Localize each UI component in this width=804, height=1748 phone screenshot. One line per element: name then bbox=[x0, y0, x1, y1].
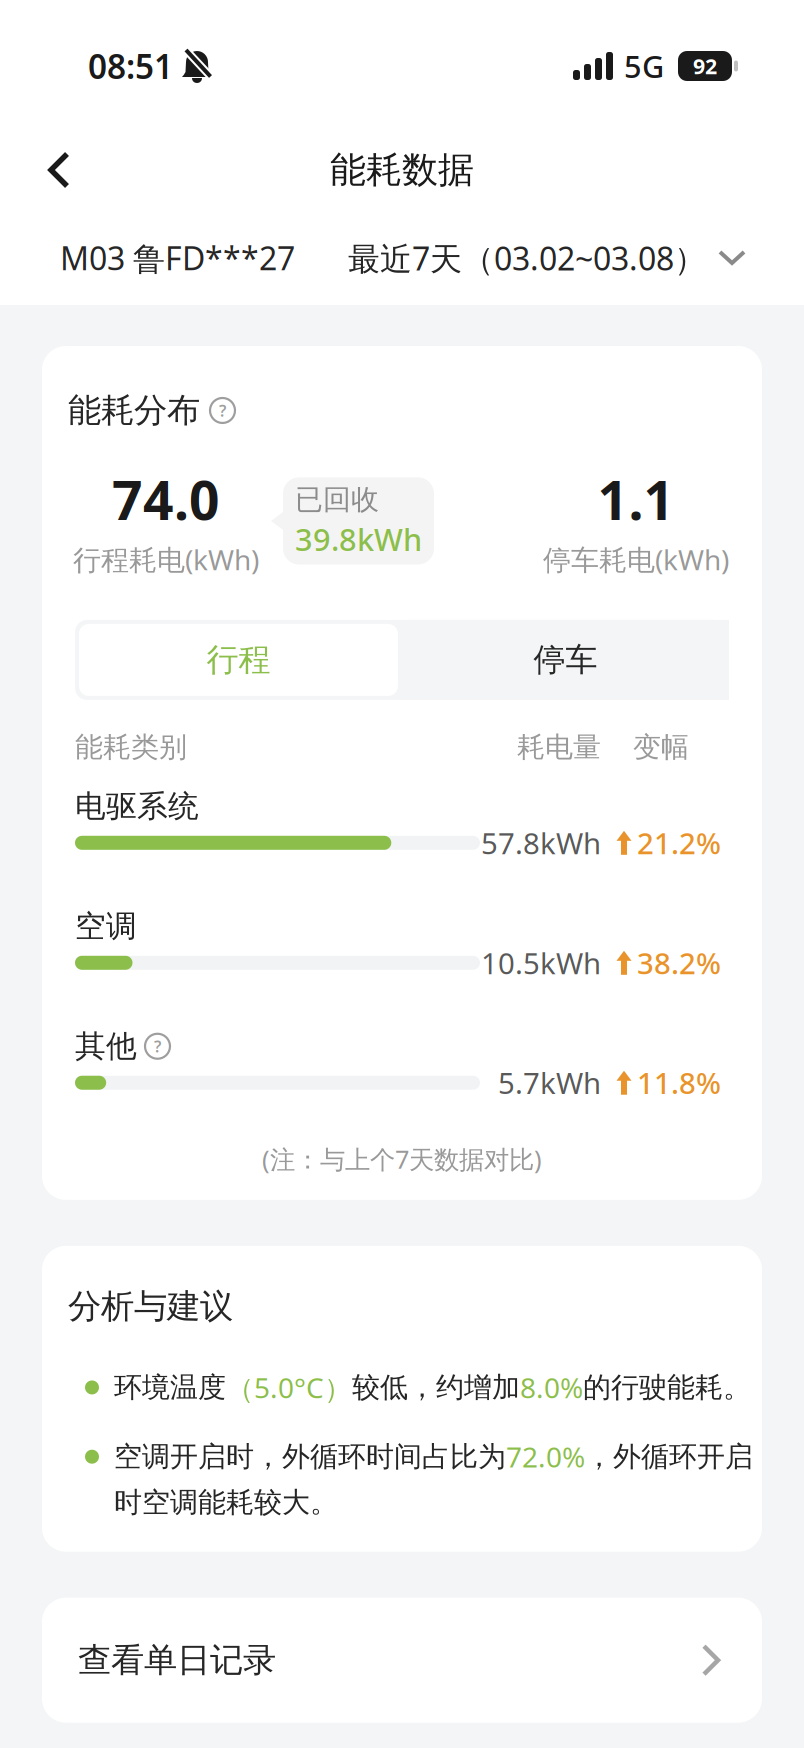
staticText: 57.8kWh bbox=[481, 823, 601, 862]
staticText: 较低，约增加 bbox=[352, 1370, 520, 1405]
button[interactable]: 停车 bbox=[402, 620, 729, 700]
staticText: 空调 bbox=[75, 907, 137, 945]
staticText: ，外循环开启 bbox=[585, 1439, 753, 1474]
staticText: 8.0% bbox=[520, 1369, 583, 1406]
staticText: 环境温度 bbox=[114, 1370, 226, 1405]
button[interactable]: 行程 bbox=[75, 620, 402, 700]
button[interactable]: 最近7天（03.02~03.08） bbox=[348, 237, 746, 279]
staticText: 分析与建议 bbox=[68, 1286, 233, 1327]
staticText: 停车耗电(kWh) bbox=[543, 541, 729, 578]
staticText: M03 鲁FD***27 bbox=[60, 237, 295, 279]
staticText: 能耗数据 bbox=[330, 148, 474, 192]
staticText: 72.0% bbox=[506, 1438, 585, 1475]
staticText: ? bbox=[219, 400, 226, 421]
staticText: 变幅 bbox=[633, 730, 689, 764]
button[interactable]: Help bbox=[210, 398, 235, 423]
staticText: 其他 bbox=[75, 1027, 137, 1065]
staticText: ? bbox=[154, 1036, 161, 1057]
staticText: 已回收 bbox=[295, 482, 379, 517]
staticText: 11.8% bbox=[637, 1063, 721, 1102]
staticText: 耗电量 bbox=[517, 730, 601, 764]
staticText: 39.8kWh bbox=[295, 519, 422, 559]
staticText: 行程耗电(kWh) bbox=[73, 541, 259, 578]
staticText: （5.0°C） bbox=[226, 1369, 352, 1406]
staticText: 停车 bbox=[533, 640, 597, 680]
staticText: 38.2% bbox=[637, 943, 721, 982]
staticText: 最近7天（03.02~03.08） bbox=[348, 237, 706, 279]
staticText: 能耗类别 bbox=[75, 730, 187, 764]
staticText: 能耗分布 bbox=[68, 390, 200, 431]
staticText: (注：与上个7天数据对比) bbox=[262, 1142, 542, 1176]
staticText: 电驱系统 bbox=[75, 787, 199, 825]
staticText: 08:51 bbox=[88, 44, 173, 88]
staticText: 1.1 bbox=[597, 464, 674, 535]
staticText: 92 bbox=[693, 52, 717, 80]
staticText: 行程 bbox=[206, 640, 270, 680]
staticText: 的行驶能耗。 bbox=[583, 1370, 751, 1405]
staticText: 5G bbox=[624, 46, 664, 86]
staticText: 74.0 bbox=[112, 464, 220, 535]
button[interactable]: Help bbox=[145, 1034, 170, 1059]
staticText: 5.7kWh bbox=[498, 1063, 601, 1102]
staticText: 21.2% bbox=[637, 823, 721, 862]
staticText: 空调开启时，外循环时间占比为 bbox=[114, 1439, 506, 1474]
staticText: 时空调能耗较大。 bbox=[114, 1485, 338, 1520]
button[interactable]: Back bbox=[0, 149, 94, 191]
button[interactable]: 查看单日记录 bbox=[42, 1598, 762, 1723]
staticText: 10.5kWh bbox=[481, 943, 601, 982]
staticText: 查看单日记录 bbox=[78, 1640, 276, 1681]
